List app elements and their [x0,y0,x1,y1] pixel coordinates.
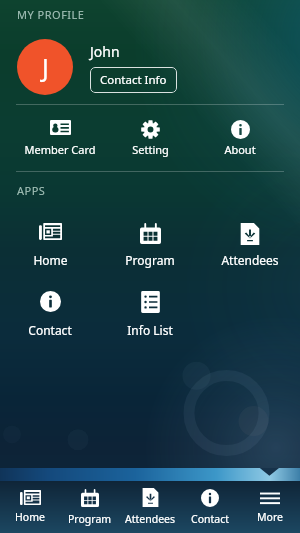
button[interactable]: More [240,481,300,533]
staticText: Attendees [221,252,279,268]
staticText: MY PROFILE [17,7,85,22]
button[interactable]: About [195,120,285,162]
button[interactable]: Info List [100,291,200,339]
button[interactable]: Contact Info [90,67,177,93]
button[interactable]: Program [60,481,120,533]
button[interactable]: J [17,39,73,95]
staticText: Home [33,252,68,268]
staticText: Contact [28,322,72,338]
staticText: About [224,142,256,157]
button[interactable]: Setting [105,120,195,162]
staticText: Info List [127,322,173,338]
button[interactable]: Home [0,223,100,271]
staticText: Setting [132,142,169,157]
staticText: APPS [17,183,46,198]
button[interactable]: Contact [180,481,240,533]
button[interactable]: Member Card [15,120,105,162]
button[interactable]: Program [100,223,200,271]
staticText: Contact [191,512,229,526]
button[interactable]: Attendees [200,223,300,271]
staticText: John [90,42,120,61]
staticText: Program [125,252,175,268]
staticText: More [257,510,283,524]
button[interactable]: Home [0,481,60,533]
staticText: Contact Info [100,72,167,88]
staticText: Attendees [125,512,176,526]
staticText: Member Card [24,142,96,157]
staticText: Home [15,510,45,524]
button[interactable]: Contact [0,291,100,339]
staticText: Program [68,512,112,526]
staticText: J [42,50,49,84]
button[interactable]: Attendees [120,481,180,533]
